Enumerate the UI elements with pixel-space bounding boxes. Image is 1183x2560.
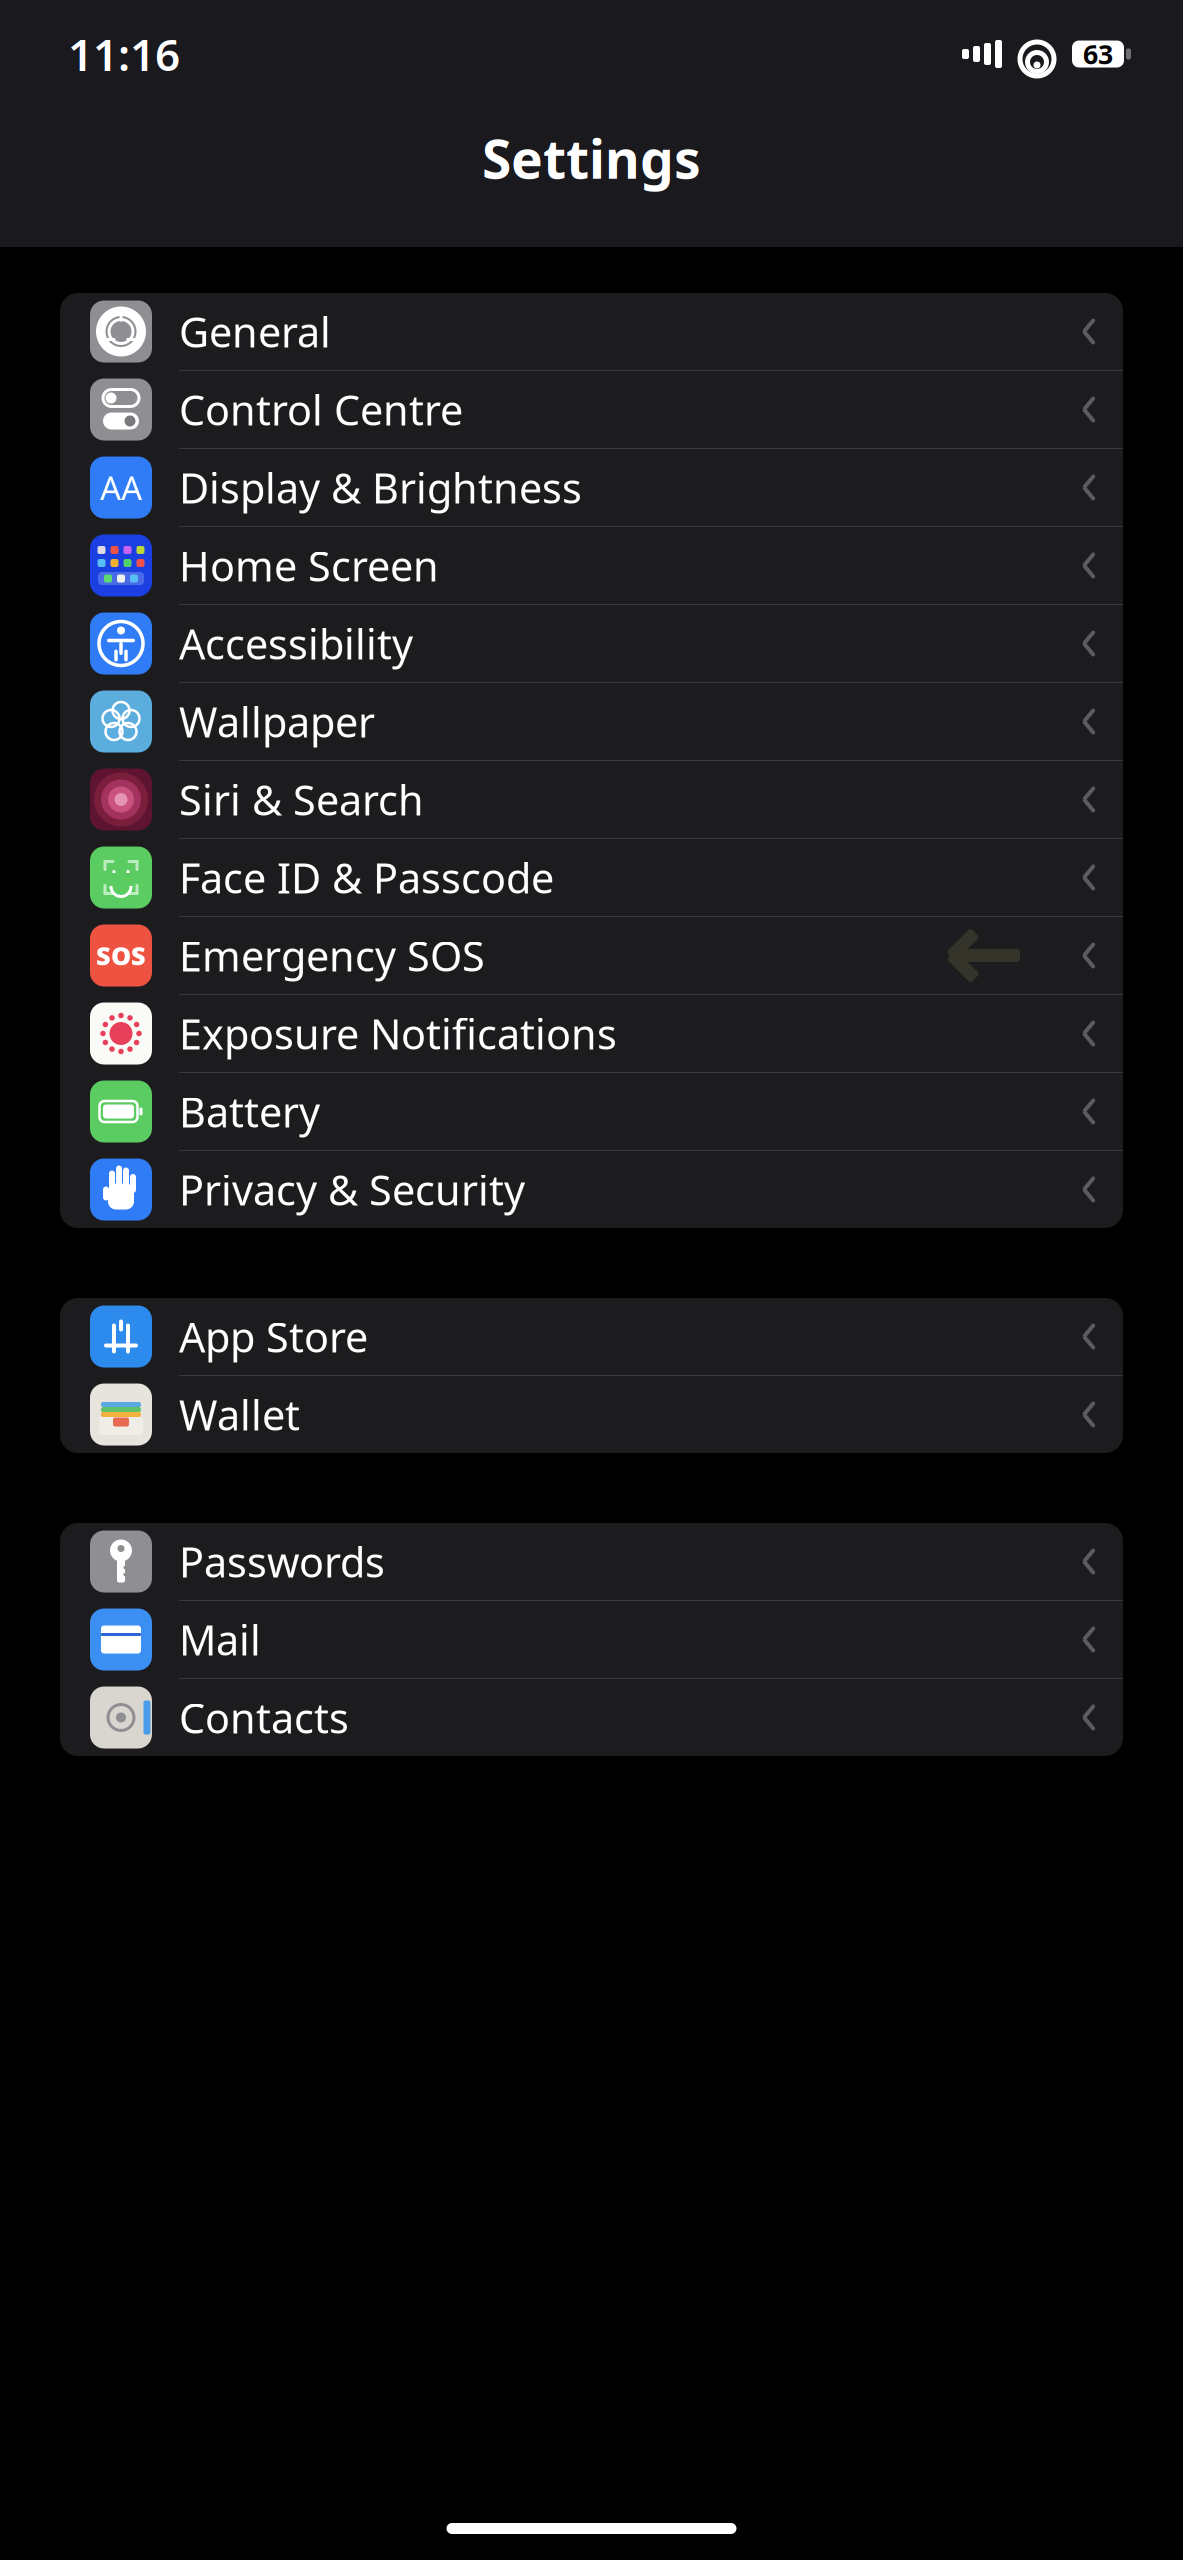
button[interactable]: SOS [60,917,1123,995]
staticText: App Store [179,1309,368,1364]
staticText: Control Centre [179,382,463,437]
staticText: 63 [1083,36,1113,72]
button[interactable]: App Store [60,1298,1123,1376]
staticText: Wallet [179,1387,300,1442]
button[interactable]: Accessibility [60,605,1123,683]
button[interactable]: Control Centre [60,371,1123,449]
button[interactable]: Siri & Search [60,761,1123,839]
staticText: Wallpaper [179,694,375,749]
staticText: Home Screen [179,538,439,593]
staticText: Accessibility [179,616,413,671]
button[interactable]: Battery [60,1073,1123,1151]
staticText: General [179,304,331,359]
staticText: Display & Brightness [179,460,582,515]
staticText: Contacts [179,1690,349,1745]
staticText: Passwords [179,1534,385,1589]
staticText: Privacy & Security [179,1162,525,1217]
staticText: Siri & Search [179,772,424,827]
button[interactable]: Mail [60,1601,1123,1679]
staticText: Settings [482,123,701,193]
button[interactable]: Exposure Notifications [60,995,1123,1073]
button[interactable]: Privacy & Security [60,1151,1123,1228]
staticText: Face ID & Passcode [179,850,554,905]
button[interactable]: Passwords [60,1523,1123,1601]
button[interactable]: General [60,293,1123,371]
button[interactable]: AA [60,449,1123,527]
button[interactable]: Home Screen [60,527,1123,605]
staticText: Battery [179,1084,320,1139]
button[interactable]: Wallpaper [60,683,1123,761]
button[interactable]: Contacts [60,1679,1123,1756]
staticText: AA [100,465,142,510]
button[interactable]: Wallet [60,1376,1123,1453]
button[interactable]: Face ID & Passcode [60,839,1123,917]
staticText: Mail [179,1612,261,1667]
staticText: Emergency SOS [179,928,485,983]
staticText: Exposure Notifications [179,1006,617,1061]
staticText: SOS [96,939,146,972]
staticText: 11:16 [68,25,180,83]
